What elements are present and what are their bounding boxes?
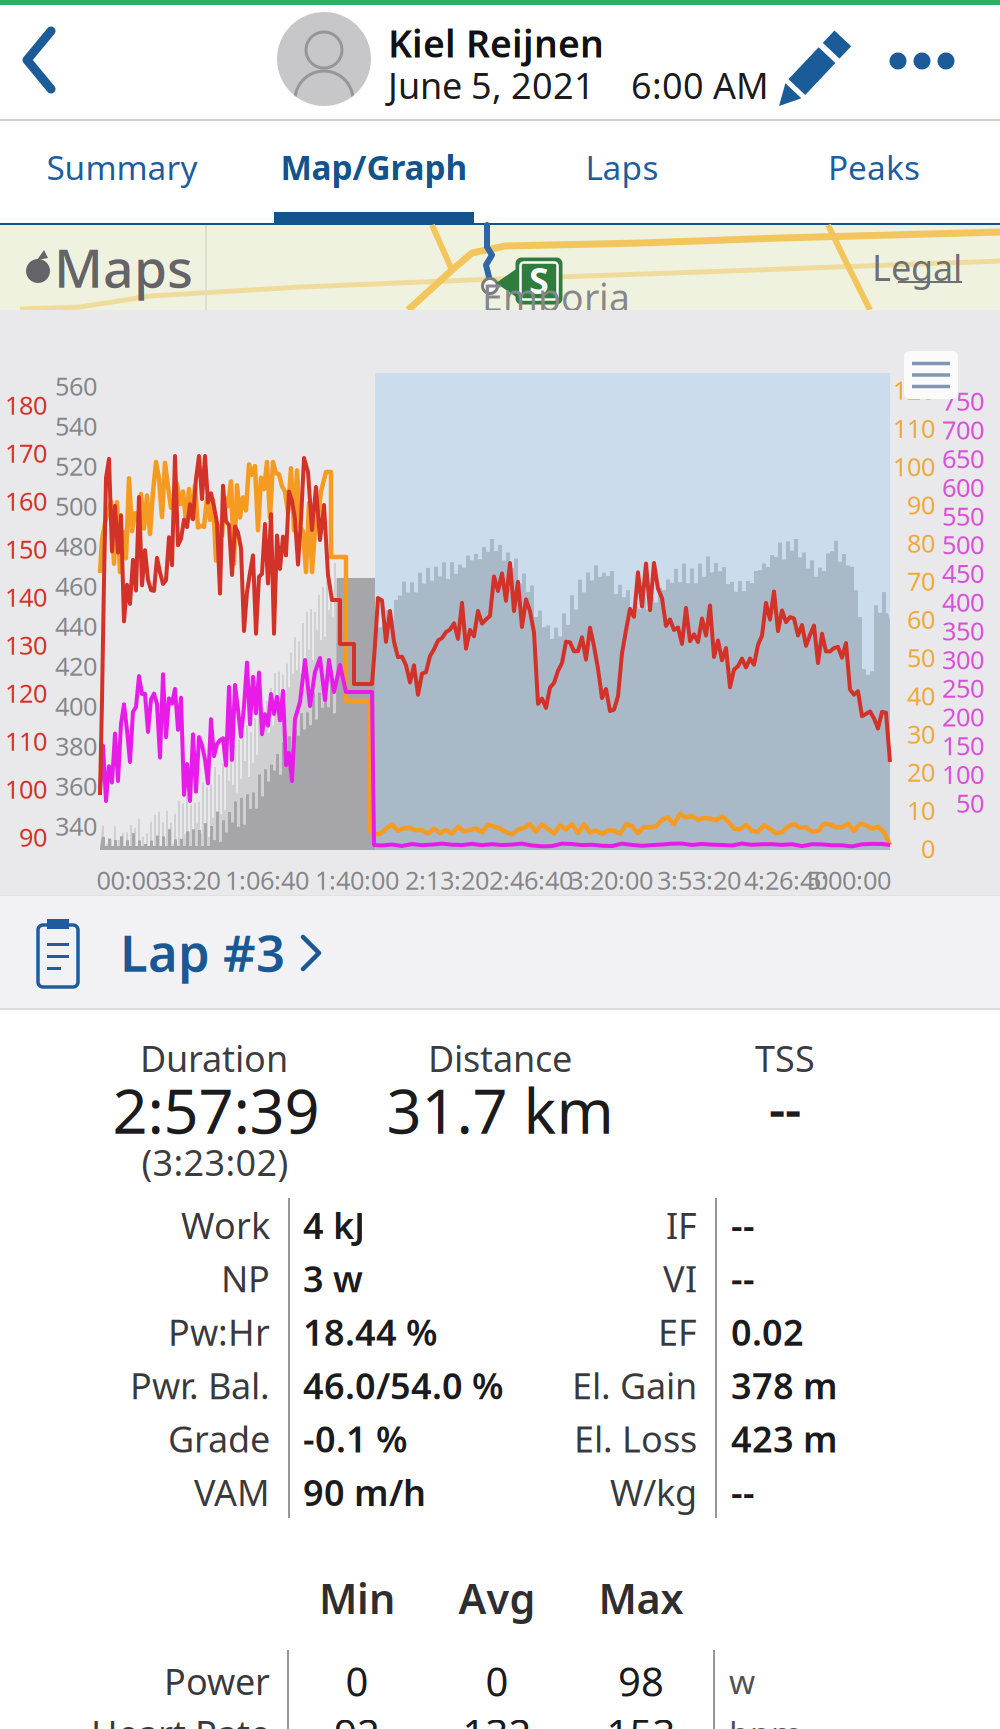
staticText: NP bbox=[221, 1254, 270, 1302]
staticText: -- bbox=[731, 1201, 755, 1249]
staticText: Laps bbox=[585, 145, 658, 189]
staticText: Emporia bbox=[482, 272, 630, 322]
staticText: 92 bbox=[334, 1706, 380, 1729]
staticText: 600 bbox=[942, 470, 984, 504]
staticText: 30 bbox=[907, 717, 935, 751]
staticText: 1:06:40 bbox=[225, 863, 309, 897]
staticText: 500 bbox=[55, 489, 97, 523]
staticText: 170 bbox=[5, 436, 47, 470]
staticText: 50 bbox=[907, 641, 935, 674]
staticText: Heart Rate bbox=[91, 1709, 270, 1729]
staticText: 1:40:00 bbox=[315, 863, 399, 897]
staticText: 0.02 bbox=[731, 1308, 804, 1356]
staticText: 120 bbox=[5, 676, 47, 710]
staticText: 46.0/54.0 % bbox=[303, 1361, 504, 1409]
staticText: Min bbox=[319, 1571, 395, 1625]
staticText: Pw:Hr bbox=[168, 1308, 270, 1356]
staticText: 40 bbox=[907, 679, 935, 712]
staticText: 31.7 km bbox=[386, 1069, 613, 1151]
staticText: Avg bbox=[458, 1571, 535, 1625]
staticText: El. Loss bbox=[574, 1415, 697, 1462]
staticText: 480 bbox=[55, 529, 97, 563]
staticText: Max bbox=[598, 1571, 683, 1625]
staticText: -- bbox=[769, 1074, 801, 1142]
staticText: 560 bbox=[55, 369, 97, 403]
staticText: 2:57:39 bbox=[112, 1069, 319, 1151]
staticText: June 5, 2021 6:00 AM bbox=[388, 61, 769, 109]
staticText: 90 bbox=[907, 488, 935, 521]
staticText: 3:20:00 bbox=[569, 863, 653, 897]
staticText: 150 bbox=[942, 729, 984, 762]
staticText: 4:26:40 bbox=[744, 863, 828, 897]
staticText: 98 bbox=[618, 1654, 664, 1707]
staticText: 100 bbox=[5, 772, 47, 806]
staticText: Kiel Reijnen bbox=[388, 18, 604, 68]
staticText: 110 bbox=[893, 411, 935, 445]
staticText: bpm bbox=[729, 1711, 802, 1729]
staticText: 100 bbox=[942, 757, 984, 791]
staticText: 400 bbox=[55, 689, 97, 723]
staticText: 5:00:00 bbox=[807, 863, 891, 897]
staticText: 378 m bbox=[731, 1361, 838, 1409]
staticText: W/kg bbox=[610, 1468, 697, 1516]
staticText: 380 bbox=[55, 729, 97, 763]
button[interactable]: More bbox=[889, 52, 954, 69]
staticText: 18.44 % bbox=[303, 1308, 438, 1356]
button[interactable]: Legal bbox=[0, 225, 1000, 310]
staticText: 10 bbox=[907, 793, 935, 827]
button[interactable]: Lap #3 bbox=[0, 895, 1000, 1010]
staticText: 520 bbox=[55, 449, 97, 483]
staticText: Power bbox=[164, 1657, 270, 1705]
staticText: 00:00 bbox=[96, 863, 159, 897]
staticText: 0 bbox=[921, 832, 935, 865]
button[interactable]: Map/Graph bbox=[249, 122, 499, 212]
staticText: 60 bbox=[907, 602, 935, 636]
staticText: 153 bbox=[606, 1706, 675, 1729]
staticText: Summary bbox=[46, 145, 197, 189]
staticText: 70 bbox=[907, 564, 935, 598]
staticText: 50 bbox=[956, 786, 984, 820]
staticText: Maps bbox=[54, 232, 193, 302]
staticText: 0 bbox=[485, 1654, 508, 1707]
staticText: 20 bbox=[907, 755, 935, 789]
staticText: 540 bbox=[55, 409, 97, 443]
staticText: 3 w bbox=[303, 1254, 363, 1302]
staticText: 130 bbox=[5, 628, 47, 662]
staticText: 2:46:40 bbox=[489, 863, 573, 897]
button[interactable]: Back bbox=[0, 5, 90, 119]
staticText: 90 bbox=[19, 820, 47, 854]
staticText: Distance bbox=[428, 1034, 572, 1082]
staticText: 423 m bbox=[731, 1415, 838, 1462]
staticText: -- bbox=[731, 1468, 755, 1516]
staticText: Lap #3 bbox=[120, 918, 285, 986]
staticText: Legal bbox=[872, 243, 962, 291]
button[interactable]: Laps bbox=[500, 122, 744, 212]
staticText: 250 bbox=[942, 671, 984, 705]
staticText: 340 bbox=[55, 809, 97, 843]
staticText: 550 bbox=[942, 499, 984, 533]
button[interactable]: Peaks bbox=[752, 122, 996, 212]
staticText: 100 bbox=[893, 450, 935, 483]
staticText: 650 bbox=[942, 442, 984, 475]
staticText: 360 bbox=[55, 769, 97, 803]
staticText: VAM bbox=[194, 1468, 270, 1516]
staticText: 500 bbox=[942, 528, 984, 561]
staticText: 180 bbox=[5, 388, 47, 422]
staticText: IF bbox=[666, 1201, 697, 1249]
staticText: VI bbox=[663, 1254, 697, 1302]
button[interactable]: Summary bbox=[0, 122, 244, 212]
staticText: 160 bbox=[5, 484, 47, 518]
staticText: -0.1 % bbox=[303, 1415, 408, 1462]
staticText: 120 bbox=[893, 373, 935, 407]
button[interactable]: Chart options bbox=[904, 351, 958, 399]
staticText: 350 bbox=[942, 614, 984, 647]
staticText: Pwr. Bal. bbox=[130, 1361, 270, 1409]
staticText: EF bbox=[658, 1308, 697, 1356]
staticText: 110 bbox=[5, 724, 47, 758]
staticText: 440 bbox=[55, 609, 97, 643]
staticText: Peaks bbox=[828, 145, 920, 189]
staticText: S bbox=[529, 256, 549, 304]
button[interactable]: Edit bbox=[767, 11, 857, 111]
staticText: 150 bbox=[5, 532, 47, 566]
staticText: 80 bbox=[907, 526, 935, 560]
